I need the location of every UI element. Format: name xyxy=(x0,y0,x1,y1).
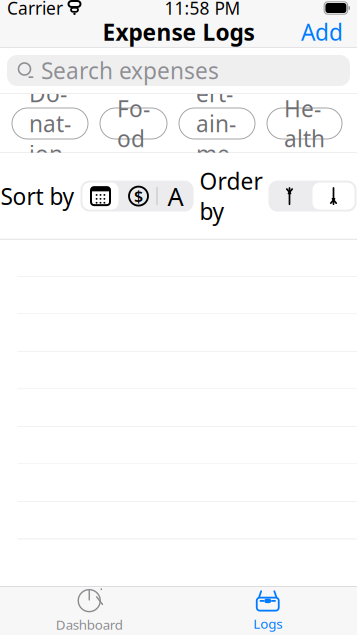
button[interactable]: Search expenses xyxy=(7,55,350,86)
staticText: 11:58 PM xyxy=(165,0,241,19)
staticText: Order by xyxy=(199,166,262,226)
button[interactable]: Health xyxy=(267,108,342,139)
staticText: Carrier xyxy=(7,0,63,19)
staticText: A xyxy=(167,179,183,213)
staticText: Expense Logs xyxy=(102,17,254,47)
button[interactable]: Entertainment xyxy=(179,108,255,139)
button[interactable]: Food xyxy=(100,108,167,139)
button[interactable]: Sort alphabetically xyxy=(157,183,193,210)
staticText: Add xyxy=(301,17,343,47)
staticText: Food xyxy=(117,93,150,154)
button[interactable] xyxy=(0,239,357,277)
staticText: Search expenses xyxy=(41,55,219,85)
button[interactable]: Dashboard xyxy=(0,583,178,635)
staticText: Donation xyxy=(29,78,71,169)
button[interactable]: Sort by amount xyxy=(120,183,156,210)
button[interactable]: Descending xyxy=(310,181,356,212)
button[interactable]: Logs xyxy=(178,584,357,635)
button[interactable]: Donation xyxy=(12,108,88,139)
button[interactable]: Sort by date xyxy=(80,181,120,212)
staticText: Logs xyxy=(253,615,282,632)
button[interactable]: Add xyxy=(295,11,349,53)
staticText: Dashboard xyxy=(56,616,123,633)
staticText: Sort by xyxy=(0,181,74,211)
staticText: Entertainment xyxy=(196,48,238,199)
staticText: Health xyxy=(284,93,325,154)
staticText: $ xyxy=(134,185,143,207)
button[interactable]: Ascending xyxy=(268,183,310,210)
